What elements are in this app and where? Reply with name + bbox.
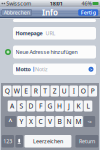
button[interactable]: A <box>8 100 16 111</box>
staticText: <x <box>87 119 91 124</box>
button[interactable]: Fertig <box>78 9 98 16</box>
button[interactable]: V <box>46 116 54 127</box>
staticText: Motto <box>15 66 30 73</box>
staticText: N <box>66 117 71 126</box>
button[interactable]: Löschen <box>84 116 95 127</box>
staticText: Leerzeichen <box>33 138 63 145</box>
staticText: Neue Adresse hinzufügen <box>15 48 77 56</box>
button[interactable]: Homepage <box>0 27 100 39</box>
button[interactable]: 123 <box>2 135 14 147</box>
staticText: Return <box>79 138 95 145</box>
staticText: U <box>62 87 67 95</box>
staticText: J <box>68 102 70 110</box>
button[interactable]: Return <box>75 135 98 147</box>
button[interactable]: G <box>46 100 54 111</box>
button[interactable]: Diktat <box>15 135 23 147</box>
staticText: F <box>39 102 42 110</box>
button[interactable]: N <box>65 116 73 127</box>
staticText: L <box>86 102 89 110</box>
staticText: G <box>47 102 52 110</box>
button[interactable]: J <box>65 100 73 111</box>
staticText: Y <box>19 117 23 126</box>
button[interactable]: H <box>55 100 64 111</box>
staticText: Swisscom <box>6 0 31 7</box>
button[interactable]: Y <box>17 116 26 127</box>
button[interactable]: Neue Adresse hinzufügen <box>0 45 100 58</box>
button[interactable]: U <box>60 85 69 96</box>
staticText: C <box>38 117 42 126</box>
staticText: M <box>75 117 81 126</box>
button[interactable]: W <box>12 85 21 96</box>
staticText: T <box>43 87 47 95</box>
button[interactable]: P <box>88 85 97 96</box>
staticText: 18:01 <box>50 0 63 7</box>
staticText: Homepage <box>15 30 42 37</box>
staticText: D <box>28 102 33 110</box>
button[interactable]: Z <box>50 85 59 96</box>
button[interactable]: E <box>22 85 31 96</box>
button[interactable]: I <box>69 85 78 96</box>
staticText: 123 <box>3 138 12 145</box>
staticText: X <box>29 117 33 126</box>
button[interactable]: K <box>74 100 83 111</box>
staticText: A <box>10 102 14 110</box>
button[interactable]: L <box>84 100 92 111</box>
staticText: O <box>81 87 86 95</box>
staticText: B <box>57 117 61 126</box>
button[interactable]: M <box>74 116 83 127</box>
staticText: > <box>90 67 92 72</box>
button[interactable]: B <box>55 116 64 127</box>
button[interactable]: C <box>36 116 45 127</box>
button[interactable]: Q <box>3 85 12 96</box>
button[interactable]: Motto <box>0 63 100 75</box>
staticText: URL <box>45 30 55 37</box>
staticText: Z <box>53 87 57 95</box>
staticText: R <box>34 87 38 95</box>
button[interactable]: Neue Adresse hinzufügen <box>5 49 11 55</box>
button[interactable]: Abbrechen <box>2 9 32 16</box>
staticText: Q <box>5 87 10 95</box>
button[interactable]: X <box>27 116 35 127</box>
button[interactable]: Umschalt <box>5 116 16 127</box>
staticText: H <box>57 102 62 110</box>
staticText: W <box>14 87 20 95</box>
staticText: Info <box>42 7 58 18</box>
staticText: Abbrechen <box>4 9 30 16</box>
button[interactable]: O <box>79 85 88 96</box>
staticText: K <box>76 102 80 110</box>
button[interactable]: Leerzeichen <box>24 135 71 147</box>
staticText: V <box>48 117 52 126</box>
staticText: E <box>24 87 28 95</box>
staticText: I <box>73 87 75 95</box>
staticText: Notiz <box>35 66 48 73</box>
button[interactable]: S <box>17 100 26 111</box>
staticText: 46% <box>81 0 91 7</box>
button[interactable]: D <box>27 100 35 111</box>
button[interactable]: T <box>41 85 50 96</box>
staticText: Fertig <box>81 9 96 16</box>
staticText: S <box>19 102 23 110</box>
staticText: ^ <box>9 117 13 126</box>
button[interactable]: R <box>31 85 40 96</box>
staticText: P <box>91 87 95 95</box>
button[interactable]: F <box>36 100 45 111</box>
